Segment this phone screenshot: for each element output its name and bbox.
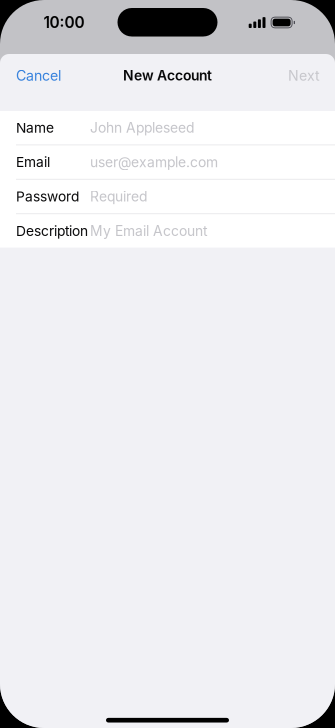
button[interactable]: Next <box>276 54 335 97</box>
staticText: John Appleseed <box>90 119 194 136</box>
staticText: Cancel <box>16 67 61 84</box>
button[interactable]: Password <box>0 180 335 213</box>
button[interactable]: Cancel <box>0 54 73 97</box>
staticText: Password <box>16 188 79 205</box>
staticText: 10:00 <box>43 13 84 32</box>
staticText: My Email Account <box>90 222 208 239</box>
staticText: Required <box>90 188 147 205</box>
button[interactable]: Name <box>0 111 335 144</box>
staticText: Email <box>16 154 50 170</box>
staticText: Next <box>288 67 320 84</box>
staticText: user@example.com <box>90 154 218 170</box>
staticText: New Account <box>123 67 212 84</box>
staticText: Description <box>16 223 88 239</box>
staticText: Name <box>16 119 54 136</box>
button[interactable]: Email <box>0 145 335 179</box>
button[interactable]: Description <box>0 214 335 248</box>
